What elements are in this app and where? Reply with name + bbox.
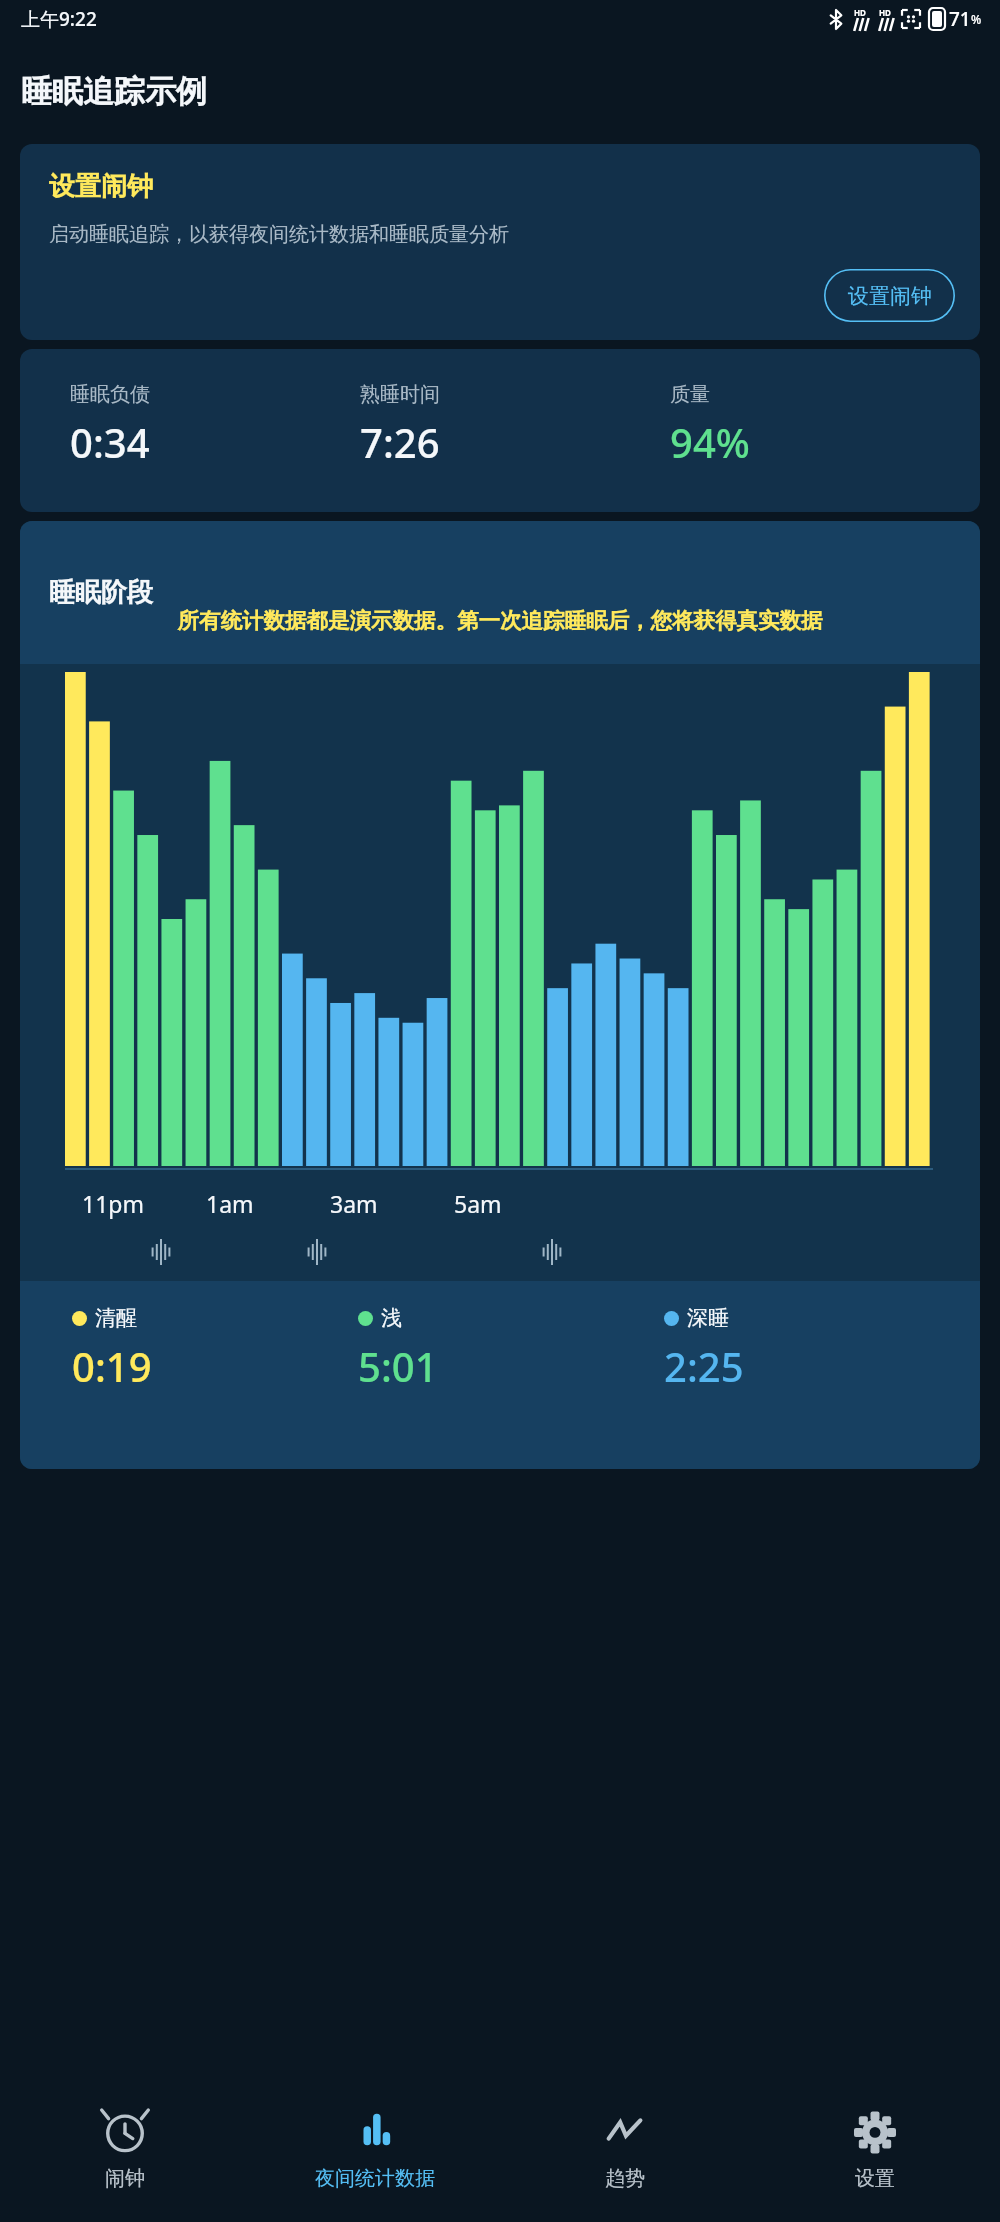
staticText: 上午9:22 [21, 6, 97, 32]
staticText: 启动睡眠追踪，以获得夜间统计数据和睡眠质量分析 [49, 222, 509, 247]
staticText: 深睡 [687, 1305, 729, 1331]
staticText: 熟睡时间 [360, 382, 440, 407]
other: 设置 [851, 2106, 899, 2154]
other: 闹钟 [101, 2106, 149, 2154]
staticText: 5am [454, 1188, 502, 1219]
button[interactable]: 设置闹钟 [824, 269, 955, 322]
staticText: 睡眠追踪示例 [21, 72, 207, 111]
staticText: 94% [670, 415, 750, 469]
staticText: 所有统计数据都是演示数据。第一次追踪睡眠后，您将获得真实数据 [30, 607, 970, 634]
staticText: 夜间统计数据 [315, 2166, 435, 2191]
staticText: HD [879, 7, 891, 18]
button[interactable]: 设置 [750, 2082, 1000, 2222]
staticText: 5:01 [358, 1339, 438, 1393]
other: 夜间统计数据 [351, 2106, 399, 2154]
staticText: % [971, 11, 982, 27]
staticText: 71 [949, 6, 971, 32]
other: 趋势 [601, 2106, 649, 2154]
button[interactable]: 趋势 [500, 2082, 750, 2222]
staticText: 0:34 [70, 415, 150, 469]
staticText: 趋势 [605, 2166, 645, 2191]
staticText: 设置闹钟 [49, 170, 153, 203]
staticText: 质量 [670, 382, 710, 407]
staticText: 1am [206, 1188, 254, 1219]
button[interactable]: 睡眠阶段 [20, 521, 980, 664]
button[interactable]: 设置闹钟 [20, 144, 980, 340]
staticText: 设置闹钟 [848, 283, 932, 309]
staticText: 闹钟 [105, 2166, 145, 2191]
staticText: 3am [330, 1188, 378, 1219]
staticText: HD [854, 7, 866, 18]
staticText: 浅 [381, 1305, 402, 1331]
staticText: 2:25 [664, 1339, 744, 1393]
staticText: 11pm [82, 1188, 144, 1219]
button[interactable]: 闹钟 [0, 2082, 250, 2222]
staticText: 7:26 [360, 415, 440, 469]
staticText: 清醒 [95, 1305, 137, 1331]
staticText: 睡眠阶段 [49, 576, 153, 609]
button[interactable]: 睡眠负债 [20, 349, 980, 512]
staticText: 设置 [855, 2166, 895, 2191]
staticText: 0:19 [72, 1339, 152, 1393]
staticText: 睡眠负债 [70, 382, 150, 407]
button[interactable]: 夜间统计数据 [250, 2082, 500, 2222]
